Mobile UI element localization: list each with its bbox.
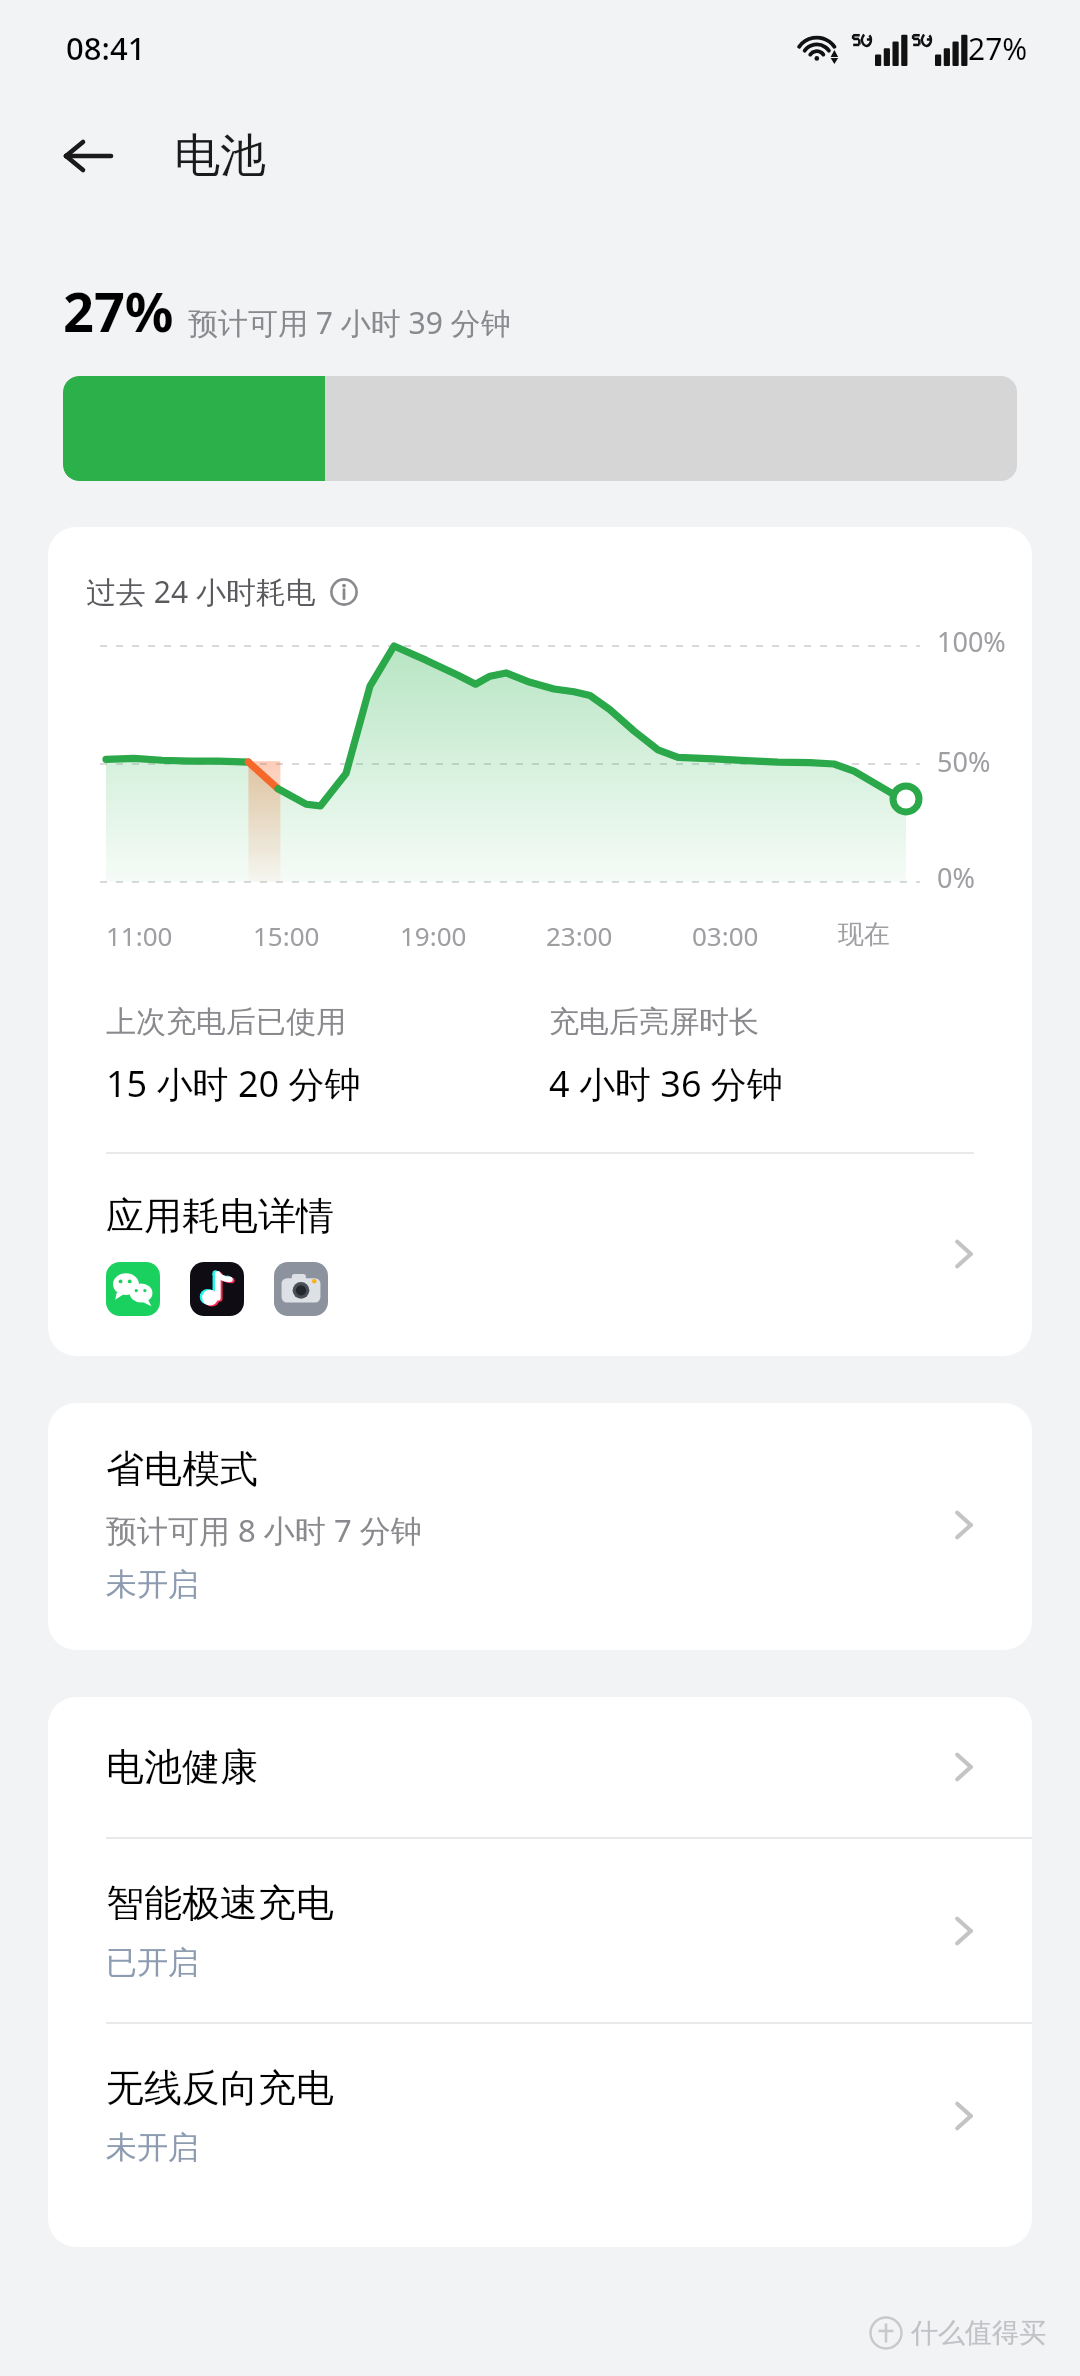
staticText: 预计可用 8 小时 7 分钟 — [106, 1509, 422, 1551]
staticText: 100% — [937, 623, 1006, 660]
staticText: 什么值得买 — [911, 2316, 1046, 2350]
staticText: 现在 — [838, 918, 984, 951]
staticText: 15:00 — [253, 918, 400, 953]
staticText: 23:00 — [546, 918, 692, 953]
other: 进入 — [932, 2086, 992, 2146]
staticText: 11:00 — [106, 918, 253, 953]
other: 进入 — [932, 1224, 992, 1284]
staticText: 27% — [968, 28, 1028, 69]
staticText: 50% — [937, 743, 991, 780]
staticText: 08:41 — [66, 27, 146, 69]
staticText: 预计可用 7 小时 39 分钟 — [188, 302, 511, 343]
staticText: 19:00 — [400, 918, 546, 953]
staticText: 过去 24 小时耗电 — [86, 571, 316, 612]
staticText: 03:00 — [692, 918, 838, 953]
button[interactable]: 无线反向充电 — [48, 2024, 1032, 2207]
staticText: 智能极速充电 — [106, 1879, 334, 1927]
staticText: 未开启 — [106, 1565, 199, 1604]
staticText: 4 小时 36 分钟 — [549, 1059, 783, 1108]
staticText: 15 小时 20 分钟 — [106, 1059, 361, 1108]
staticText: 已开启 — [106, 1943, 199, 1982]
staticText: 无线反向充电 — [106, 2064, 334, 2112]
button[interactable]: 说明 — [328, 576, 360, 608]
button[interactable]: 省电模式 — [48, 1403, 1032, 1650]
staticText: 27% — [63, 274, 174, 348]
staticText: 电池 — [174, 127, 266, 185]
staticText: 充电后亮屏时长 — [549, 1003, 759, 1041]
staticText: 省电模式 — [106, 1445, 258, 1493]
staticText: 应用耗电详情 — [106, 1192, 334, 1240]
button[interactable]: 应用耗电详情 — [48, 1154, 1032, 1356]
staticText: 0% — [937, 859, 975, 896]
staticText: 电池健康 — [106, 1743, 258, 1791]
button[interactable]: 电池健康 — [48, 1697, 1032, 1837]
staticText: 未开启 — [106, 2128, 199, 2167]
button[interactable]: 智能极速充电 — [48, 1839, 1032, 2022]
staticText: 上次充电后已使用 — [106, 1003, 346, 1041]
button[interactable]: 返回 — [46, 114, 130, 198]
other: 进入 — [932, 1901, 992, 1961]
other: 进入 — [932, 1495, 992, 1555]
other: 进入 — [932, 1737, 992, 1797]
